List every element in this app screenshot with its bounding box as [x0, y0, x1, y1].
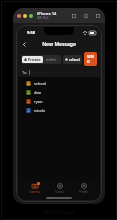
button[interactable]: nicole: [18, 106, 100, 115]
button[interactable]: ryan: [18, 97, 100, 106]
button[interactable]: Settings: [82, 12, 89, 19]
button[interactable]: Minimize: [23, 14, 27, 18]
button[interactable]: school: [18, 79, 100, 88]
staticText: Profile: [79, 190, 89, 194]
button[interactable]: Close: [17, 14, 21, 18]
staticText: Camera: [29, 190, 40, 194]
staticText: New Message: [42, 41, 76, 48]
staticText: iOS 16.2: [37, 16, 49, 20]
button[interactable]: Circles: [51, 182, 69, 195]
staticText: SEND: [87, 54, 94, 64]
staticText: iPhone 14: [37, 11, 57, 16]
staticText: 9:58: [27, 30, 35, 35]
button[interactable]: school: [63, 55, 82, 64]
button[interactable]: Camera: [25, 182, 44, 195]
button[interactable]: Maximize: [29, 14, 33, 18]
button[interactable]: Back: [19, 39, 29, 49]
staticText: Circles: [55, 190, 65, 194]
staticText: dan: [34, 90, 42, 95]
staticText: nicole: [34, 108, 46, 113]
button[interactable]: Private: [22, 56, 43, 63]
staticText: Private: [28, 57, 41, 62]
staticText: To:: [22, 70, 28, 75]
button[interactable]: SEND: [84, 52, 97, 66]
staticText: school: [34, 81, 47, 86]
button[interactable]: Home: [70, 12, 77, 19]
button[interactable]: within: [43, 56, 60, 63]
button[interactable]: Record: [94, 12, 101, 19]
button[interactable]: To:: [18, 68, 100, 77]
button[interactable]: dan: [18, 88, 100, 97]
staticText: within: [46, 57, 57, 62]
staticText: school: [69, 57, 80, 62]
button[interactable]: Profile: [75, 182, 93, 195]
staticText: ryan: [34, 99, 43, 104]
